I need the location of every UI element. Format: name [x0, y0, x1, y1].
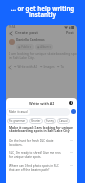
- staticText: On the hunt for fresh DLC skate location…: [9, 139, 70, 147]
- button[interactable]: Make it casual: [6, 108, 70, 116]
- staticText: 9:54: [9, 25, 16, 29]
- staticText: Make it casual: [9, 110, 28, 114]
- button[interactable]: Shorter: [29, 118, 43, 124]
- staticText: ✒ Images: [40, 65, 55, 69]
- staticText: SLC, I'm ready to shred! Give me recs fo…: [9, 151, 70, 159]
- button[interactable]: On the hunt for fresh DLC skate location…: [9, 139, 74, 147]
- staticText: ◉ Public ▾: [18, 45, 32, 49]
- button[interactable]: Info: [69, 101, 73, 105]
- staticText: i: [71, 101, 72, 105]
- staticText: Casual: [59, 119, 68, 123]
- button[interactable]: Fix grammar: [7, 118, 28, 124]
- button[interactable]: Post: [64, 29, 76, 36]
- staticText: ⋯: [70, 164, 74, 168]
- staticText: ⋯: [70, 139, 74, 143]
- button[interactable]: Funny: [44, 118, 56, 124]
- button[interactable]: ◉ Public ▾: [16, 44, 34, 50]
- staticText: ... or get help writing instantly: [0, 4, 85, 19]
- staticText: Shorter: [31, 119, 41, 123]
- staticText: ⋯: [70, 151, 74, 155]
- staticText: Fix grammar: [9, 119, 26, 123]
- staticText: Where can I find photo spots in SLC that…: [9, 164, 70, 172]
- staticText: I am looking for unique skateboarding sp…: [9, 51, 77, 60]
- button[interactable]: Where can I find photo spots in SLC that…: [9, 164, 74, 172]
- staticText: ◉ Album ▾: [37, 45, 51, 49]
- staticText: Make it casual: I am looking for unique …: [9, 125, 73, 133]
- staticText: Funny: [46, 119, 54, 123]
- staticText: ✒ Ta: [57, 65, 64, 69]
- staticText: ✒ Write with AI: [14, 65, 37, 69]
- button[interactable]: Back: [8, 30, 14, 36]
- staticText: Post: [66, 30, 74, 35]
- staticText: Daniella Cardenas: [16, 38, 45, 42]
- button[interactable]: ◉ Album ▾: [35, 44, 53, 50]
- staticText: Create post: [15, 30, 38, 35]
- button[interactable]: Casual: [57, 118, 70, 124]
- staticText: Write with AI: [29, 101, 54, 106]
- button[interactable]: SLC, I'm ready to shred! Give me recs fo…: [9, 151, 74, 159]
- button[interactable]: Send: [71, 109, 76, 114]
